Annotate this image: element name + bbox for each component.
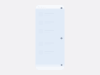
button[interactable]: Add xyxy=(60,37,62,39)
staticText: Today xyxy=(37,6,46,10)
button[interactable]: Profile xyxy=(60,7,62,9)
